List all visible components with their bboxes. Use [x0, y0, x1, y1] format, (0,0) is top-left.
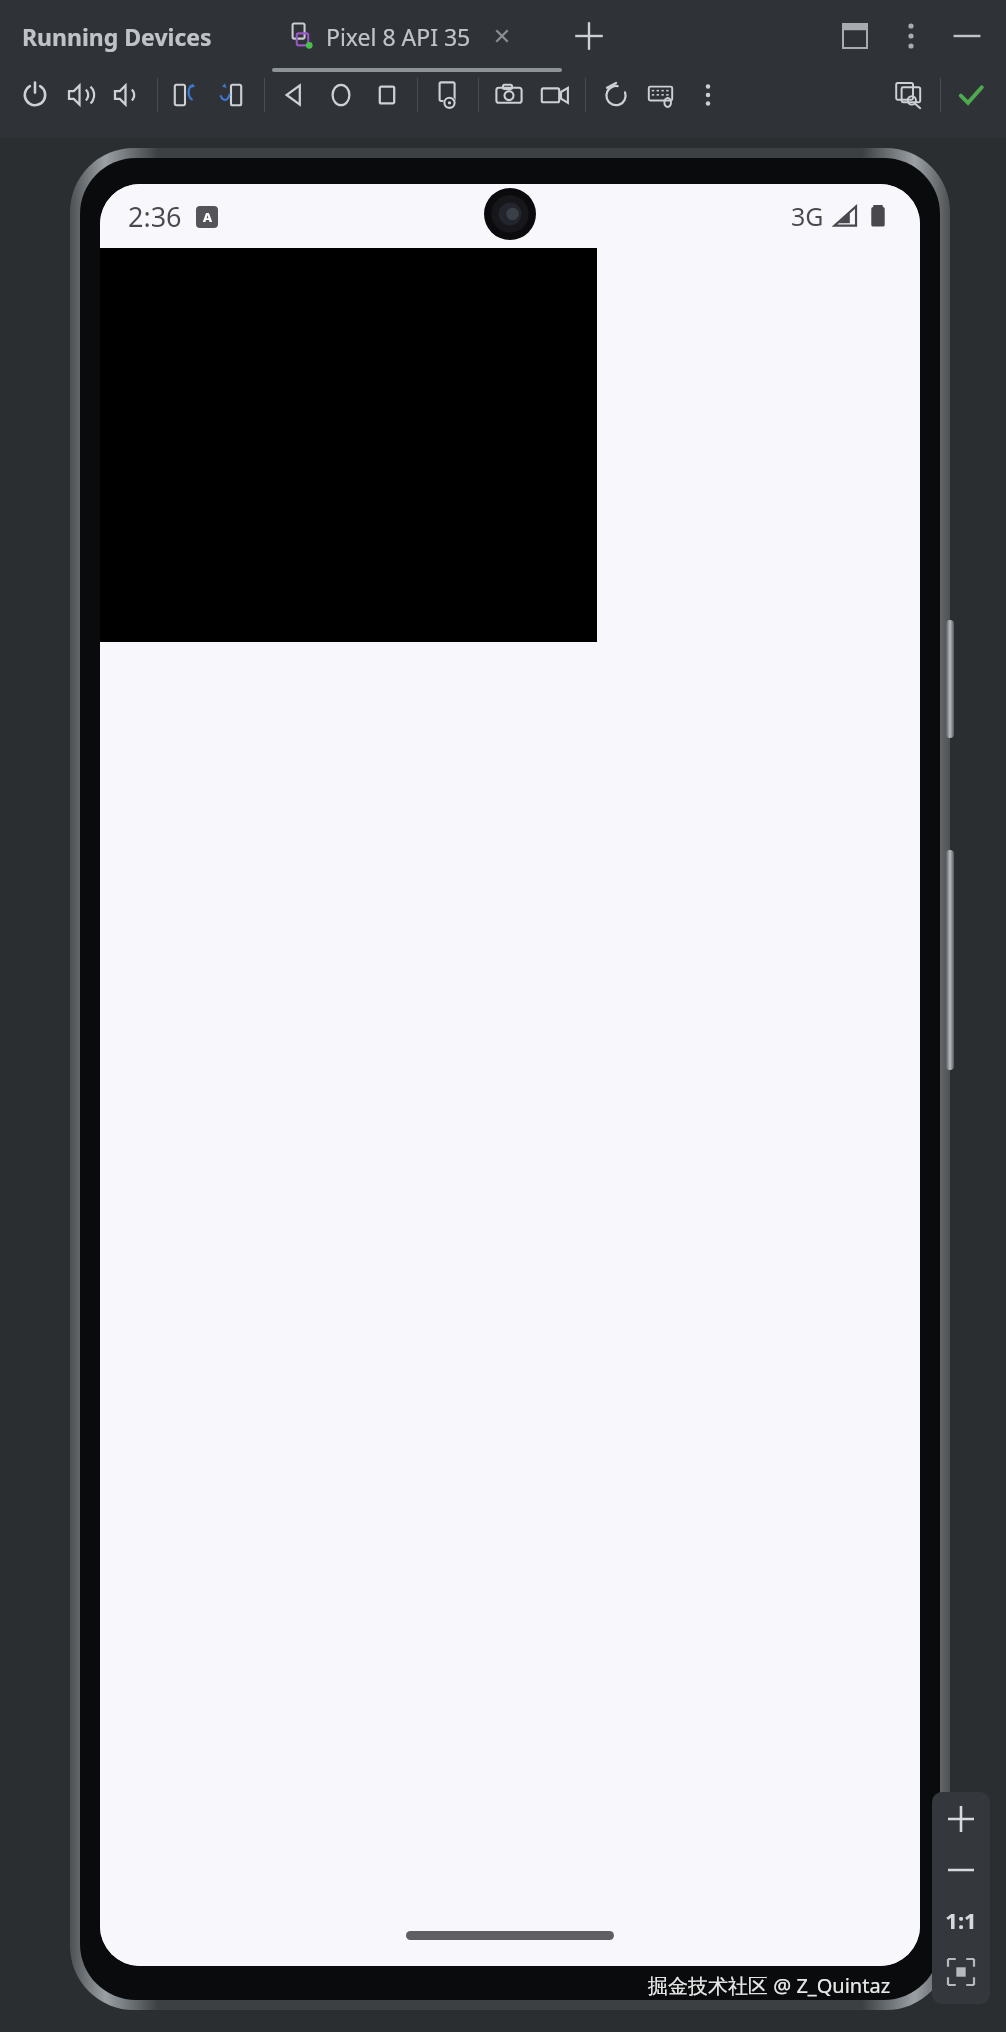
button[interactable]: Record screen	[532, 72, 578, 118]
button[interactable]: Zoom out	[932, 1846, 990, 1894]
button[interactable]: Device settings	[425, 72, 471, 118]
button[interactable]: Home gesture	[406, 1931, 614, 1940]
button[interactable]: Power	[12, 72, 58, 118]
button[interactable]: Power button	[946, 620, 954, 738]
staticText: A	[203, 208, 212, 226]
button[interactable]: More	[685, 72, 731, 118]
staticText: 掘金技术社区 @ Z_Quintaz	[648, 1972, 891, 1999]
staticText: Running Devices	[22, 21, 212, 52]
button[interactable]: Recents	[364, 72, 410, 118]
button[interactable]: Running	[948, 72, 994, 118]
button[interactable]: Volume buttons	[946, 850, 954, 1070]
staticText: 1:1	[945, 1905, 977, 1935]
button[interactable]: Rotate right	[211, 72, 257, 118]
button[interactable]: Zoom to fit	[932, 1946, 990, 1998]
button[interactable]: Volume down	[104, 72, 150, 118]
button[interactable]: Rotate left	[165, 72, 211, 118]
button[interactable]: Back	[272, 72, 318, 118]
button[interactable]: Minimize	[946, 15, 988, 57]
staticText: 3G	[791, 199, 824, 233]
staticText: 2:36	[128, 198, 182, 235]
button[interactable]: Zoom in	[932, 1792, 990, 1846]
button[interactable]: Screenshot	[486, 72, 532, 118]
button[interactable]: Actual size 1 to 1	[932, 1894, 990, 1946]
button[interactable]: Pixel 8 API 35	[276, 0, 529, 72]
button[interactable]: Keyboard	[639, 72, 685, 118]
button[interactable]: Close tab	[489, 23, 515, 49]
button[interactable]: New tab	[566, 13, 612, 59]
button[interactable]: More options	[890, 15, 932, 57]
button[interactable]: Split / layout	[834, 15, 876, 57]
button[interactable]: Inspect UI	[887, 72, 933, 118]
staticText: Pixel 8 API 35	[326, 21, 471, 52]
button[interactable]: Home	[318, 72, 364, 118]
button[interactable]: Undo / back	[593, 72, 639, 118]
button[interactable]: Volume up	[58, 72, 104, 118]
